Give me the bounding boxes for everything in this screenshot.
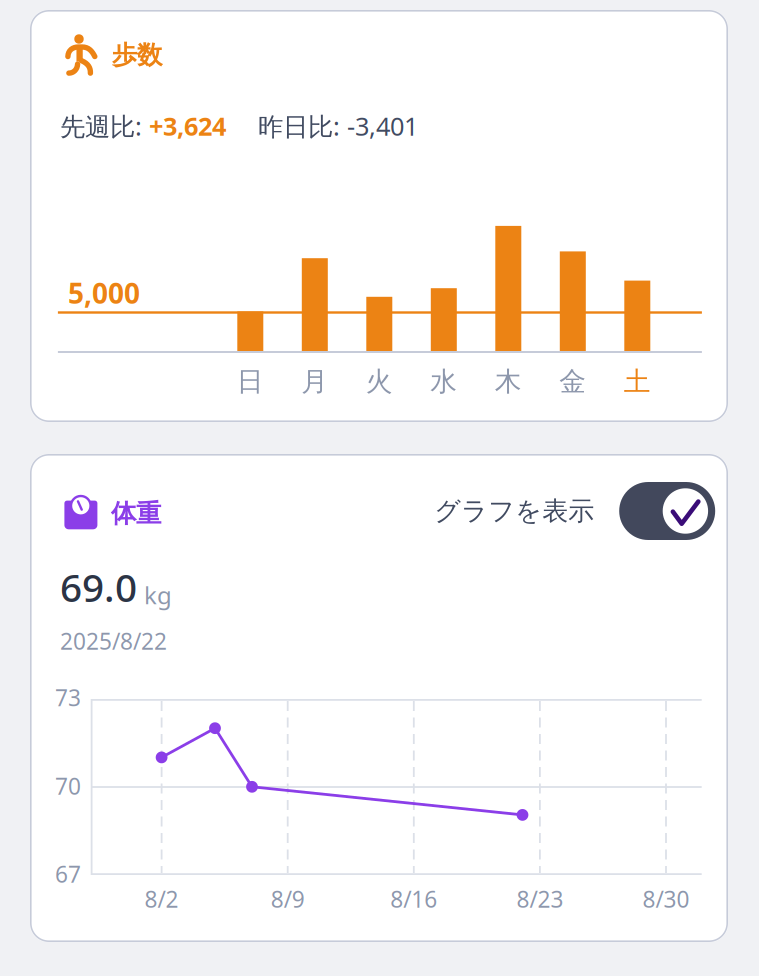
staticText: 5,000 xyxy=(68,274,140,312)
staticText: 8/30 xyxy=(642,884,689,914)
staticText: +3,624 xyxy=(149,109,226,143)
staticText: 67 xyxy=(55,859,81,889)
staticText: 69.0 xyxy=(60,561,137,613)
staticText: 8/16 xyxy=(390,884,437,914)
staticText: 水 xyxy=(430,365,457,398)
staticText: 73 xyxy=(55,682,81,713)
staticText: 日 xyxy=(237,365,264,398)
staticText: kg xyxy=(144,579,172,611)
staticText: 月 xyxy=(301,365,328,398)
staticText: 8/23 xyxy=(516,884,563,914)
staticText: 昨日比: xyxy=(226,109,347,143)
staticText: グラフを表示 xyxy=(434,495,594,527)
staticText: 金 xyxy=(559,365,586,398)
staticText: 土 xyxy=(624,365,651,398)
staticText: 8/9 xyxy=(271,884,305,914)
staticText: 70 xyxy=(55,771,81,801)
staticText: 体重 xyxy=(111,497,161,529)
staticText: 8/2 xyxy=(145,884,179,914)
staticText: -3,401 xyxy=(347,109,418,143)
staticText: 先週比: xyxy=(60,109,149,143)
button[interactable]: グラフを表示 xyxy=(434,482,715,540)
staticText: 木 xyxy=(495,365,522,398)
staticText: 2025/8/22 xyxy=(60,626,167,656)
staticText: 歩数 xyxy=(112,39,162,71)
staticText: 火 xyxy=(366,365,393,398)
